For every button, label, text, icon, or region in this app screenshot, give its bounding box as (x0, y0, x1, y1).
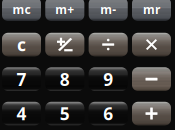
staticText: 7 (16, 68, 26, 91)
button[interactable]: mc (2, 0, 41, 21)
button[interactable]: 6 (89, 102, 128, 125)
staticText: c (17, 33, 26, 56)
button[interactable]: 8 (45, 67, 84, 91)
button[interactable]: m- (89, 0, 128, 21)
button[interactable]: 4 (2, 102, 41, 125)
button[interactable]: c (2, 33, 41, 56)
staticText: 9 (103, 68, 113, 91)
button[interactable]: Plus minus (45, 33, 84, 56)
button[interactable]: Multiply (132, 33, 171, 56)
button[interactable]: Subtract (132, 67, 171, 91)
button[interactable]: 7 (2, 67, 41, 91)
staticText: 5 (60, 102, 70, 125)
staticText: mr (143, 1, 160, 17)
button[interactable]: 5 (45, 102, 84, 125)
staticText: m+ (55, 1, 74, 17)
button[interactable]: Add (132, 102, 171, 125)
staticText: 4 (16, 102, 26, 125)
staticText: 6 (103, 102, 113, 125)
staticText: m- (100, 1, 116, 17)
button[interactable]: m+ (45, 0, 84, 21)
button[interactable]: mr (132, 0, 171, 21)
staticText: 8 (60, 68, 70, 91)
button[interactable]: 9 (89, 67, 128, 91)
button[interactable]: Divide (89, 33, 128, 56)
staticText: mc (12, 1, 30, 17)
